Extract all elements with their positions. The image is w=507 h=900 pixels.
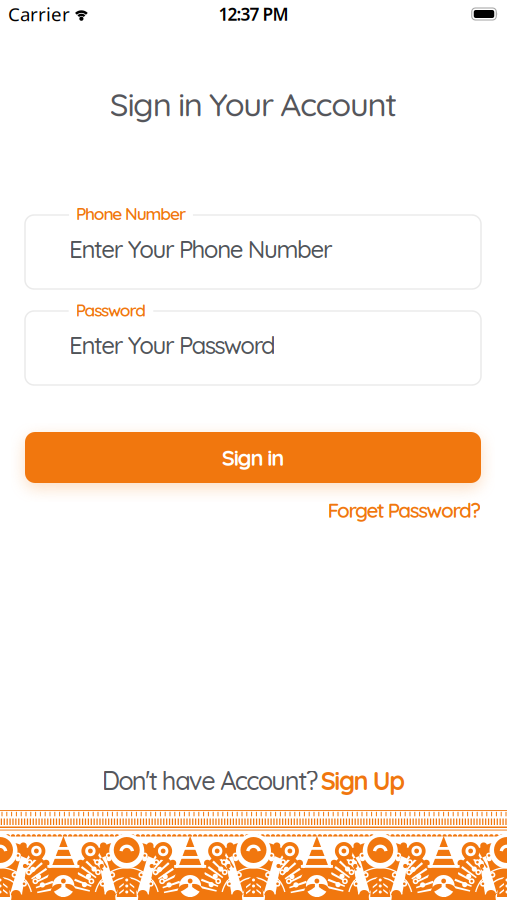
button[interactable]: Forget Password? [328,497,481,523]
staticText: Sign in [222,444,284,471]
staticText: Sign in Your Account [110,84,397,124]
button[interactable]: Sign in [25,432,481,483]
staticText: 12:37 PM [218,2,288,25]
button[interactable]: Password [25,303,481,385]
button[interactable]: Phone Number [25,207,481,289]
staticText: Password [76,299,146,321]
staticText: Enter Your Password [69,330,276,360]
staticText: Phone Number [76,203,186,224]
staticText: Don't have Account? [102,765,319,796]
button[interactable]: Don't have Account? [102,765,405,796]
staticText: Forget Password? [328,497,481,523]
staticText: Sign Up [321,765,405,796]
staticText: Carrier [8,2,70,26]
staticText: Enter Your Phone Number [69,234,333,264]
